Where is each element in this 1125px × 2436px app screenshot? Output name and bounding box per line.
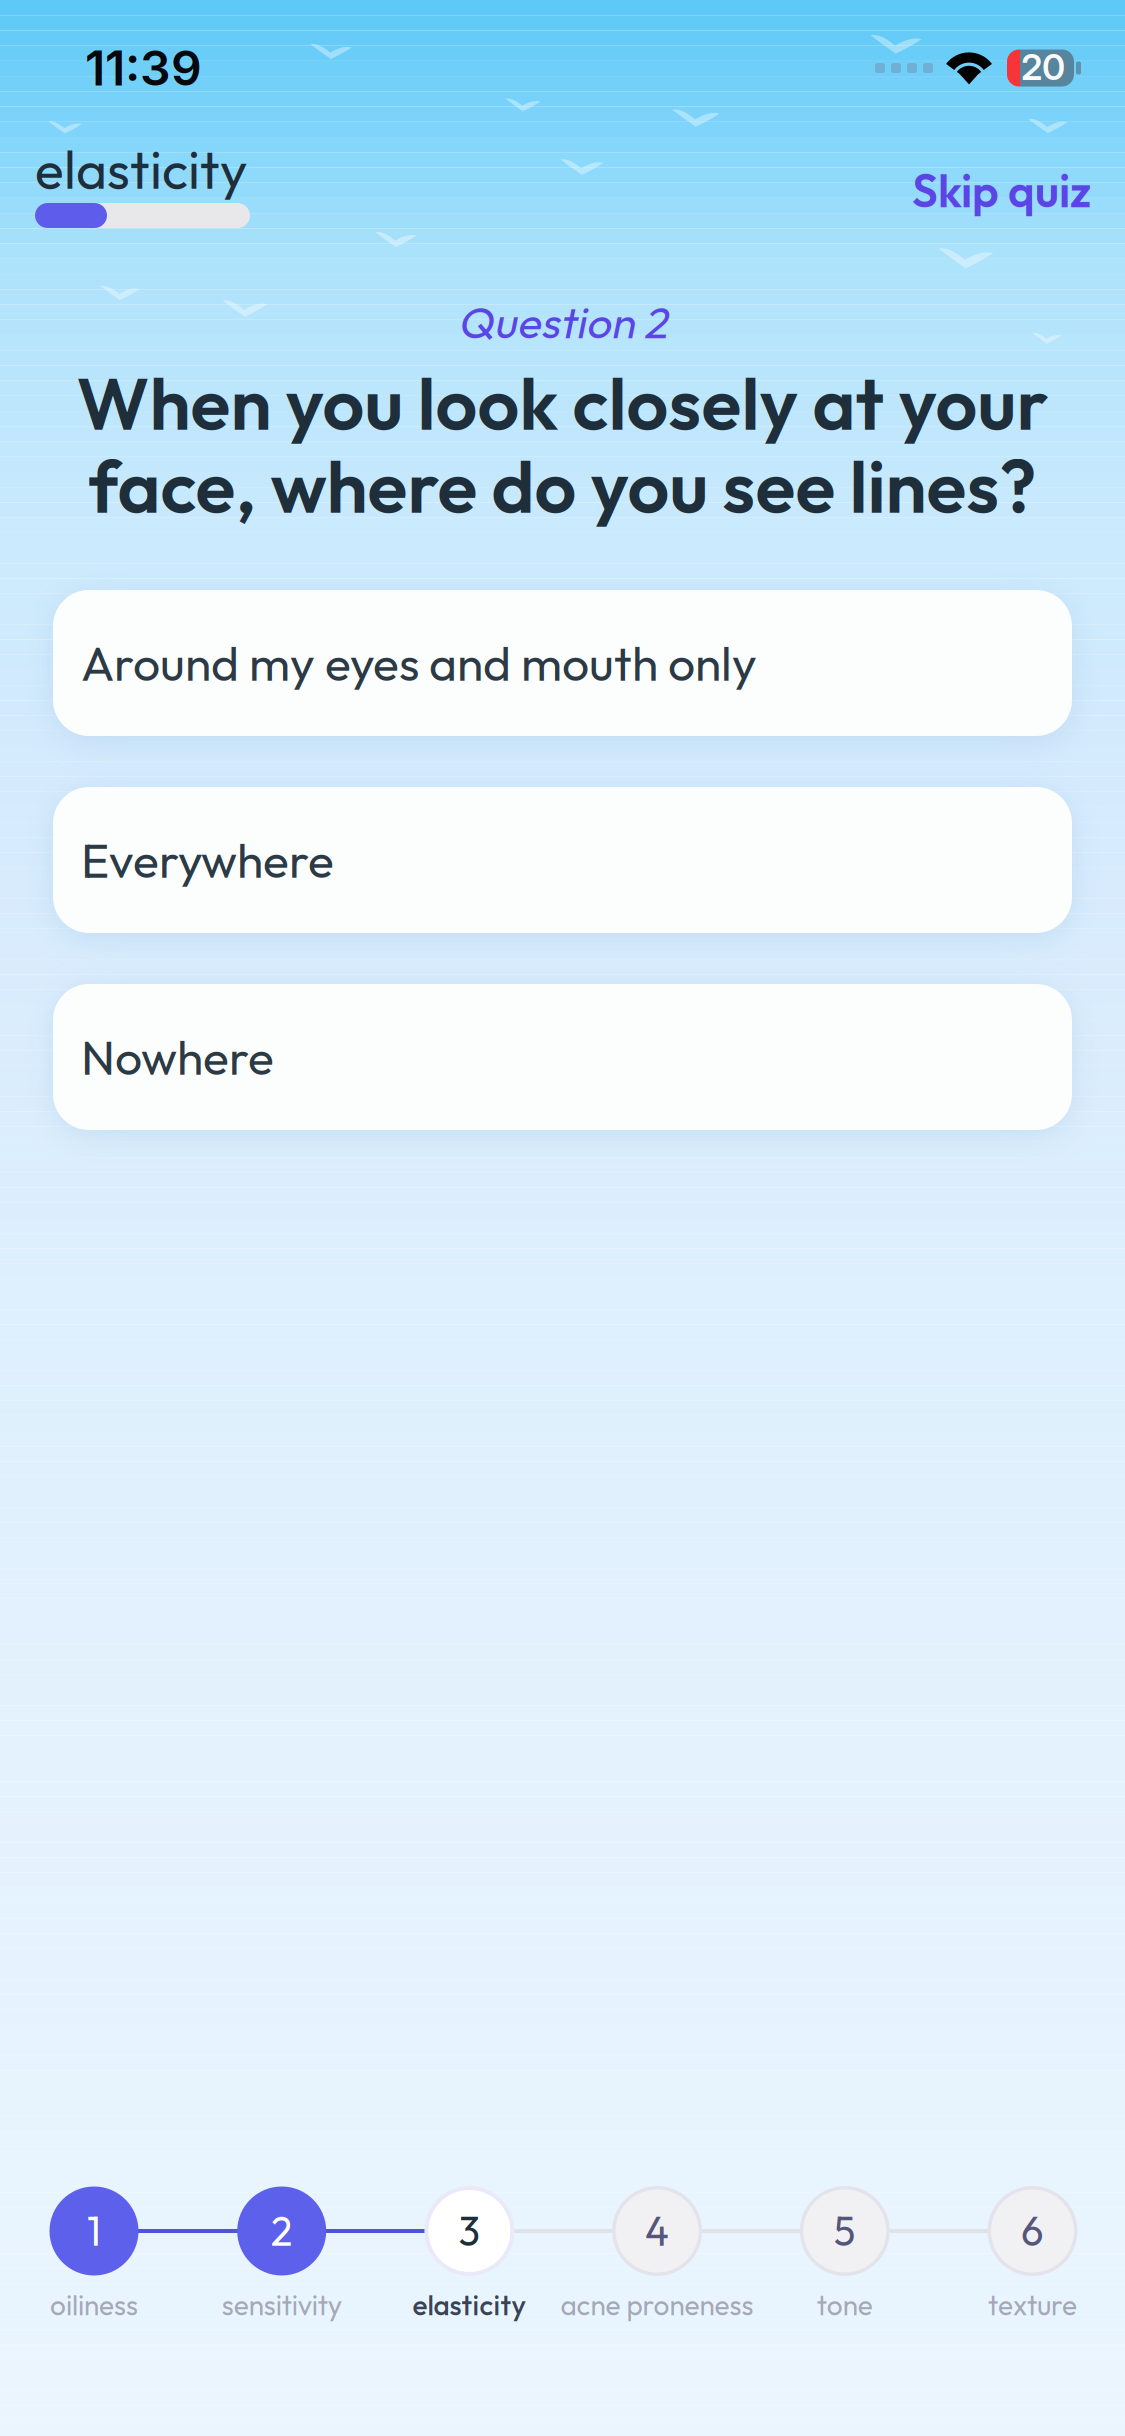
- staticText: 5: [834, 2206, 856, 2256]
- staticText: Around my eyes and mouth only: [81, 633, 757, 693]
- staticText: Nowhere: [81, 1027, 274, 1087]
- staticText: 4: [645, 2206, 669, 2256]
- staticText: 2: [271, 2206, 293, 2256]
- staticText: texture: [988, 2287, 1077, 2323]
- staticText: Skip quiz: [912, 162, 1091, 219]
- staticText: acne proneness: [561, 2287, 754, 2323]
- button[interactable]: 2: [142, 2186, 422, 2320]
- staticText: 3: [458, 2206, 480, 2256]
- button[interactable]: 5: [705, 2186, 985, 2320]
- staticText: When you look closely at your: [76, 356, 1048, 449]
- staticText: tone: [817, 2287, 873, 2323]
- button[interactable]: Skip quiz: [896, 146, 1107, 235]
- button[interactable]: 3: [329, 2186, 609, 2320]
- staticText: oiliness: [50, 2287, 138, 2323]
- button[interactable]: Nowhere: [53, 984, 1072, 1130]
- staticText: elasticity: [412, 2287, 526, 2323]
- staticText: face, where do you see lines?: [88, 439, 1036, 532]
- staticText: elasticity: [35, 135, 247, 203]
- button[interactable]: 6: [892, 2186, 1125, 2320]
- staticText: Everywhere: [81, 830, 334, 890]
- staticText: sensitivity: [222, 2287, 342, 2323]
- staticText: 6: [1021, 2206, 1044, 2256]
- staticText: Question 2: [457, 294, 667, 350]
- button[interactable]: 4: [517, 2186, 797, 2320]
- button[interactable]: Around my eyes and mouth only: [53, 590, 1072, 736]
- staticText: 20: [1021, 45, 1065, 89]
- button[interactable]: 1: [0, 2186, 234, 2320]
- button[interactable]: Everywhere: [53, 787, 1072, 933]
- staticText: 11:39: [85, 39, 202, 97]
- staticText: 1: [87, 2206, 101, 2256]
